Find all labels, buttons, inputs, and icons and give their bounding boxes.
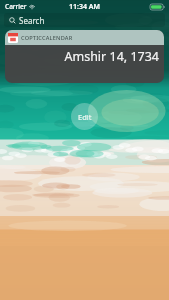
- button[interactable]: Search: [4, 13, 165, 27]
- button[interactable]: Edit widgets: [71, 103, 98, 130]
- staticText: COPTICCALENDAR: [21, 34, 73, 42]
- staticText: Search: [19, 15, 45, 26]
- staticText: Carrier: [5, 2, 27, 11]
- button[interactable]: COPTICCALENDAR: [5, 30, 164, 83]
- staticText: Amshir 14, 1734: [64, 48, 159, 65]
- staticText: 11:34 AM: [69, 2, 100, 12]
- staticText: Edit: [78, 112, 92, 122]
